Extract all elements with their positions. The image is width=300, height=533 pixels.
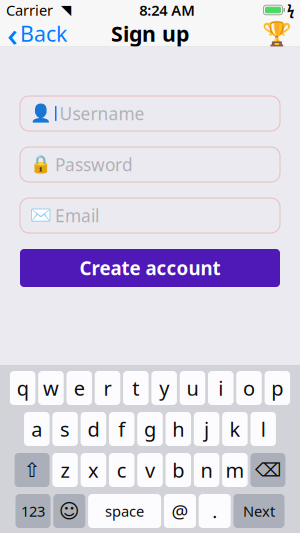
staticText: r xyxy=(104,375,112,401)
button[interactable]: o xyxy=(236,371,262,405)
button[interactable]: e xyxy=(66,371,92,405)
button[interactable]: Achievements xyxy=(254,20,300,47)
button[interactable]: Emoji xyxy=(53,494,85,528)
staticText: p xyxy=(271,375,283,401)
button[interactable]: Next xyxy=(233,494,284,528)
staticText: ϟ xyxy=(287,1,294,19)
staticText: i xyxy=(218,375,223,401)
button[interactable]: p xyxy=(265,371,290,405)
button[interactable]: Numbers xyxy=(15,494,50,528)
button[interactable]: ✉️ xyxy=(20,198,280,233)
staticText: f xyxy=(118,416,125,442)
button[interactable]: x xyxy=(81,453,106,487)
staticText: 👤 xyxy=(30,104,52,123)
staticText: l xyxy=(261,416,266,442)
staticText: e xyxy=(74,375,85,401)
staticText: t xyxy=(132,375,139,401)
button[interactable]: . xyxy=(199,494,231,528)
button[interactable]: i xyxy=(208,371,233,405)
staticText: m xyxy=(225,457,244,483)
button[interactable]: Delete xyxy=(250,453,285,487)
button[interactable]: a xyxy=(24,412,49,446)
button[interactable]: b xyxy=(166,453,191,487)
button[interactable]: s xyxy=(52,412,78,446)
staticText: g xyxy=(144,416,156,442)
staticText: a xyxy=(31,416,42,442)
staticText: ☺ xyxy=(59,500,80,522)
button[interactable]: q xyxy=(10,371,35,405)
button[interactable]: d xyxy=(81,412,106,446)
staticText: space xyxy=(105,501,144,521)
staticText: w xyxy=(43,375,59,401)
staticText: c xyxy=(117,457,127,483)
staticText: 🏆 xyxy=(262,20,292,47)
staticText: o xyxy=(243,375,255,401)
button[interactable]: y xyxy=(151,371,177,405)
staticText: . xyxy=(212,499,217,523)
button[interactable]: u xyxy=(180,371,205,405)
button[interactable]: h xyxy=(166,412,191,446)
button[interactable]: f xyxy=(109,412,134,446)
staticText: Password xyxy=(55,153,133,176)
staticText: z xyxy=(61,457,70,483)
staticText: 123 xyxy=(21,501,45,521)
button[interactable]: w xyxy=(38,371,64,405)
staticText: ✉️ xyxy=(30,206,52,225)
staticText: Back xyxy=(20,19,67,48)
button[interactable]: ‹ xyxy=(0,20,74,47)
staticText: k xyxy=(229,416,240,442)
button[interactable]: Create account xyxy=(20,249,280,287)
staticText: h xyxy=(172,416,184,442)
button[interactable]: c xyxy=(109,453,134,487)
staticText: y xyxy=(159,375,169,401)
staticText: s xyxy=(60,416,70,442)
staticText: Sign up xyxy=(111,19,189,48)
staticText: Username xyxy=(59,102,144,125)
staticText: ‹ xyxy=(7,11,18,56)
staticText: u xyxy=(186,375,198,401)
staticText: @ xyxy=(171,499,188,523)
button[interactable]: 👤 xyxy=(20,96,280,131)
button[interactable]: 🔒 xyxy=(20,147,280,182)
staticText: ◥ xyxy=(53,2,71,17)
button[interactable]: v xyxy=(137,453,163,487)
button[interactable]: m xyxy=(222,453,248,487)
button[interactable]: n xyxy=(194,453,219,487)
button[interactable]: space xyxy=(88,494,161,528)
button[interactable]: t xyxy=(123,371,149,405)
staticText: d xyxy=(87,416,99,442)
button[interactable]: Shift xyxy=(15,453,50,487)
staticText: j xyxy=(204,416,209,442)
button[interactable]: k xyxy=(222,412,248,446)
button[interactable]: z xyxy=(52,453,78,487)
staticText: x xyxy=(88,457,99,483)
staticText: n xyxy=(201,457,213,483)
button[interactable]: g xyxy=(137,412,163,446)
staticText: q xyxy=(17,375,29,401)
staticText: Next xyxy=(243,501,275,521)
staticText: Carrier xyxy=(6,0,53,20)
staticText: ⇧ xyxy=(24,459,41,481)
staticText: v xyxy=(145,457,155,483)
button[interactable]: l xyxy=(250,412,276,446)
staticText: 8:24 AM xyxy=(139,0,195,20)
staticText: Email xyxy=(55,204,99,227)
button[interactable]: r xyxy=(95,371,120,405)
staticText: 🔒 xyxy=(30,155,52,174)
staticText: ⌫ xyxy=(255,459,281,481)
button[interactable]: @ xyxy=(164,494,196,528)
staticText: b xyxy=(172,457,184,483)
button[interactable]: j xyxy=(194,412,219,446)
staticText: Create account xyxy=(79,256,220,280)
